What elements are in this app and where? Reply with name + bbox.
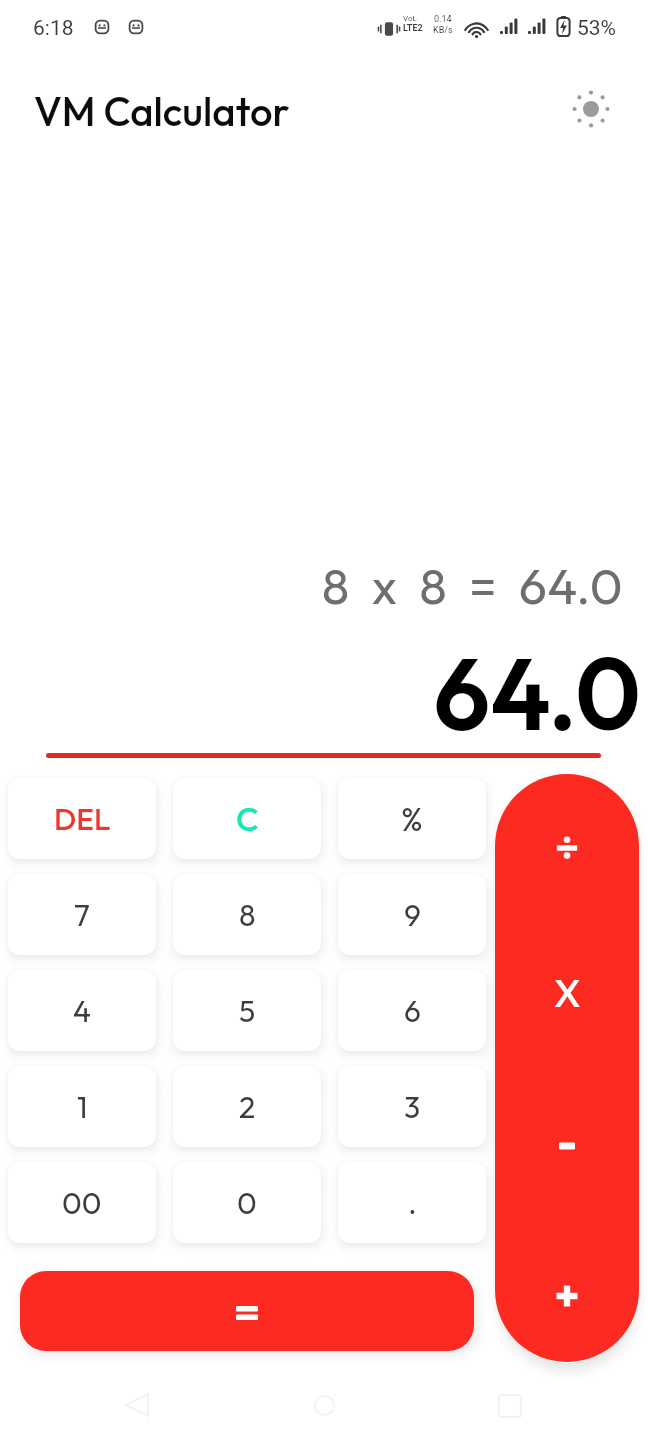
staticText: VoL: [403, 14, 417, 23]
staticText: 0: [237, 1184, 257, 1222]
staticText: 53%: [577, 16, 616, 41]
button[interactable]: 6: [338, 970, 486, 1051]
button[interactable]: Multiply: [495, 921, 639, 1068]
button[interactable]: 5: [173, 970, 321, 1051]
staticText: VM Calculator: [34, 86, 290, 136]
staticText: 00: [62, 1184, 102, 1222]
button[interactable]: DEL: [8, 778, 156, 859]
staticText: 2: [239, 1088, 256, 1126]
button[interactable]: Equals: [20, 1271, 474, 1351]
staticText: %: [401, 798, 423, 840]
button[interactable]: Recents: [486, 1382, 534, 1430]
button[interactable]: C: [173, 778, 321, 859]
button[interactable]: 9: [338, 874, 486, 955]
button[interactable]: Subtract: [495, 1068, 639, 1215]
staticText: .: [408, 1184, 417, 1222]
staticText: LTE2: [403, 23, 423, 34]
staticText: X: [554, 969, 581, 1017]
staticText: 8: [239, 896, 256, 934]
staticText: 5: [239, 992, 256, 1030]
button[interactable]: Toggle theme: [565, 83, 617, 135]
button[interactable]: %: [338, 778, 486, 859]
staticText: 64.0: [0, 630, 641, 756]
button[interactable]: 0: [173, 1162, 321, 1243]
button[interactable]: 8: [173, 874, 321, 955]
staticText: 8 x 8 = 64.0: [0, 554, 623, 617]
staticText: 1: [77, 1088, 88, 1126]
button[interactable]: 3: [338, 1066, 486, 1147]
staticText: 7: [74, 896, 90, 934]
staticText: 4: [73, 992, 91, 1030]
staticText: 6: [404, 992, 421, 1030]
staticText: 3: [404, 1088, 421, 1126]
staticText: DEL: [54, 800, 111, 838]
button[interactable]: .: [338, 1162, 486, 1243]
button[interactable]: 4: [8, 970, 156, 1051]
button[interactable]: 7: [8, 874, 156, 955]
staticText: 9: [404, 896, 421, 934]
staticText: 0.14: [434, 14, 452, 25]
button[interactable]: 2: [173, 1066, 321, 1147]
staticText: KB/s: [433, 25, 453, 36]
button[interactable]: 00: [8, 1162, 156, 1243]
staticText: C: [236, 798, 259, 840]
staticText: 6:18: [33, 16, 74, 41]
button[interactable]: Divide: [495, 774, 639, 921]
button[interactable]: 1: [8, 1066, 156, 1147]
button[interactable]: Add: [495, 1215, 639, 1362]
